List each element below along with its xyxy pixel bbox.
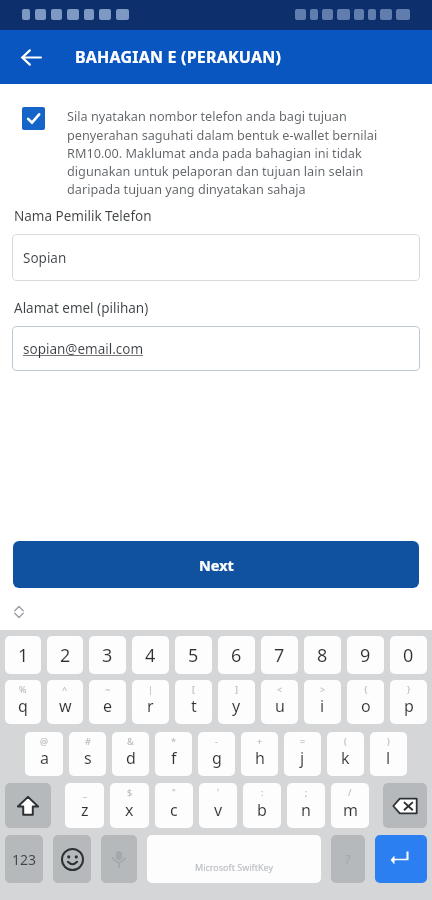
staticText: j: [300, 747, 305, 769]
button[interactable]: +: [241, 732, 278, 776]
button[interactable]: Back: [12, 38, 50, 76]
staticText: l: [386, 747, 391, 769]
button[interactable]: 9: [347, 636, 384, 674]
staticText: &: [127, 735, 134, 747]
button[interactable]: &: [112, 732, 149, 776]
button[interactable]: ': [199, 783, 237, 828]
staticText: ]: [235, 683, 238, 695]
button[interactable]: <: [261, 680, 298, 724]
button[interactable]: sopian@email.com: [12, 326, 420, 371]
button[interactable]: /: [331, 783, 369, 828]
staticText: 3: [102, 643, 113, 668]
staticText: }: [407, 683, 411, 695]
staticText: g: [212, 747, 222, 769]
staticText: BAHAGIAN E (PERAKUAN): [75, 46, 282, 68]
button[interactable]: Sila nyatakan nombor telefon anda bagi t…: [22, 107, 414, 197]
button[interactable]: Space: [147, 835, 321, 883]
button[interactable]: 5: [175, 636, 212, 674]
button[interactable]: 4: [132, 636, 169, 674]
staticText: d: [126, 747, 136, 769]
staticText: a: [40, 747, 49, 769]
staticText: ': [217, 786, 220, 798]
button[interactable]: Voice input: [101, 835, 137, 883]
staticText: 1: [18, 643, 29, 668]
button[interactable]: ;: [287, 783, 325, 828]
button[interactable]: |: [132, 680, 169, 724]
button[interactable]: _: [65, 783, 104, 828]
button[interactable]: ): [370, 732, 407, 776]
button[interactable]: 2: [47, 636, 83, 674]
staticText: Next: [199, 555, 234, 575]
staticText: @: [40, 735, 49, 747]
button[interactable]: Sopian: [12, 234, 420, 281]
button[interactable]: 8: [304, 636, 341, 674]
staticText: n: [301, 799, 311, 821]
staticText: (: [344, 735, 347, 747]
button[interactable]: *: [155, 732, 192, 776]
button[interactable]: 3: [89, 636, 126, 674]
staticText: s: [84, 747, 92, 769]
staticText: 4: [145, 643, 156, 668]
button[interactable]: 1: [5, 636, 41, 674]
staticText: =: [300, 735, 306, 747]
staticText: 5: [188, 643, 199, 668]
staticText: |: [148, 683, 153, 695]
staticText: o: [361, 695, 371, 717]
button[interactable]: 7: [261, 636, 298, 674]
button[interactable]: 0: [390, 636, 427, 674]
staticText: {: [364, 683, 368, 695]
button[interactable]: Next: [13, 541, 419, 588]
staticText: sopian@email.com: [23, 340, 144, 358]
button[interactable]: >: [304, 680, 341, 724]
button[interactable]: ": [155, 783, 193, 828]
button[interactable]: Numbers: [5, 835, 43, 883]
staticText: ": [172, 786, 176, 798]
staticText: 0: [403, 643, 414, 668]
staticText: #: [85, 735, 91, 747]
button[interactable]: Punctuation: [331, 835, 365, 883]
staticText: p: [404, 695, 414, 717]
button[interactable]: ^: [47, 680, 83, 724]
button[interactable]: Enter: [375, 835, 427, 883]
staticText: v: [214, 799, 223, 821]
button[interactable]: -: [198, 732, 235, 776]
staticText: 6: [231, 643, 242, 668]
staticText: ?: [345, 850, 351, 868]
button[interactable]: [: [175, 680, 212, 724]
button[interactable]: :: [243, 783, 281, 828]
button[interactable]: 6: [218, 636, 255, 674]
staticText: k: [341, 747, 350, 769]
staticText: Sopian: [23, 249, 67, 267]
button[interactable]: Emoji: [53, 835, 91, 883]
staticText: Microsoft SwiftKey: [195, 861, 273, 873]
staticText: c: [170, 799, 178, 821]
staticText: y: [232, 695, 241, 717]
staticText: -: [215, 735, 218, 747]
staticText: w: [59, 695, 72, 717]
button[interactable]: %: [5, 680, 41, 724]
staticText: e: [103, 695, 113, 717]
button[interactable]: Shift: [5, 783, 51, 828]
button[interactable]: Backspace: [383, 783, 427, 828]
staticText: x: [125, 799, 134, 821]
button[interactable]: =: [284, 732, 321, 776]
button[interactable]: {: [347, 680, 384, 724]
button[interactable]: ~: [89, 680, 126, 724]
button[interactable]: #: [69, 732, 106, 776]
staticText: r: [147, 695, 154, 717]
staticText: :: [261, 786, 264, 798]
button[interactable]: (: [327, 732, 364, 776]
button[interactable]: ]: [218, 680, 255, 724]
staticText: /: [348, 786, 352, 798]
staticText: [: [192, 683, 195, 695]
button[interactable]: Expand: [8, 602, 30, 622]
button[interactable]: @: [25, 732, 63, 776]
staticText: u: [275, 695, 285, 717]
button[interactable]: }: [390, 680, 427, 724]
staticText: ~: [105, 683, 111, 695]
staticText: q: [18, 695, 28, 717]
staticText: h: [255, 747, 265, 769]
staticText: b: [257, 799, 267, 821]
staticText: z: [81, 799, 89, 821]
button[interactable]: $: [110, 783, 149, 828]
